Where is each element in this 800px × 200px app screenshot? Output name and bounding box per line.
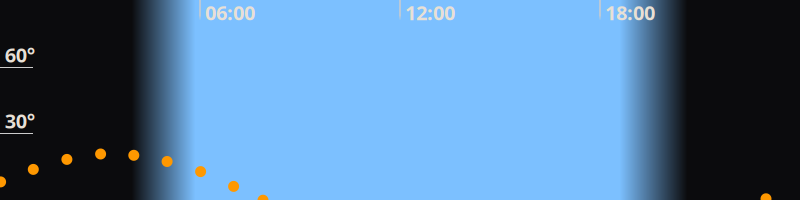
staticText: 06:00 [205,0,255,26]
staticText: 12:00 [405,0,455,26]
staticText: 18:00 [605,0,655,26]
staticText: 60° [5,41,35,68]
staticText: 30° [5,107,35,134]
